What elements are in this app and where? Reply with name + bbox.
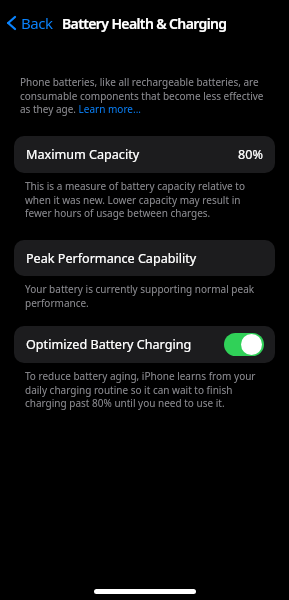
button[interactable]: Maximum Capacity (14, 136, 275, 173)
staticText: Peak Performance Capability (26, 250, 197, 267)
staticText: Battery Health & Charging (62, 14, 227, 33)
staticText: Optimized Battery Charging (26, 336, 192, 353)
staticText: To reduce battery aging, iPhone learns f… (25, 369, 272, 410)
staticText: Back (21, 13, 53, 33)
staticText: Phone batteries, like all rechargeable b… (20, 75, 267, 116)
button[interactable]: Back (4, 8, 57, 38)
staticText: Your battery is currently supporting nor… (25, 282, 272, 310)
button[interactable]: Peak Performance Capability (14, 240, 275, 276)
staticText: Maximum Capacity (26, 146, 140, 163)
staticText: This is a measure of battery capacity re… (25, 179, 266, 220)
staticText: 80% (238, 146, 263, 163)
button[interactable]: Optimized Battery Charging, on (224, 333, 264, 356)
button[interactable]: Optimized Battery Charging (14, 326, 275, 363)
